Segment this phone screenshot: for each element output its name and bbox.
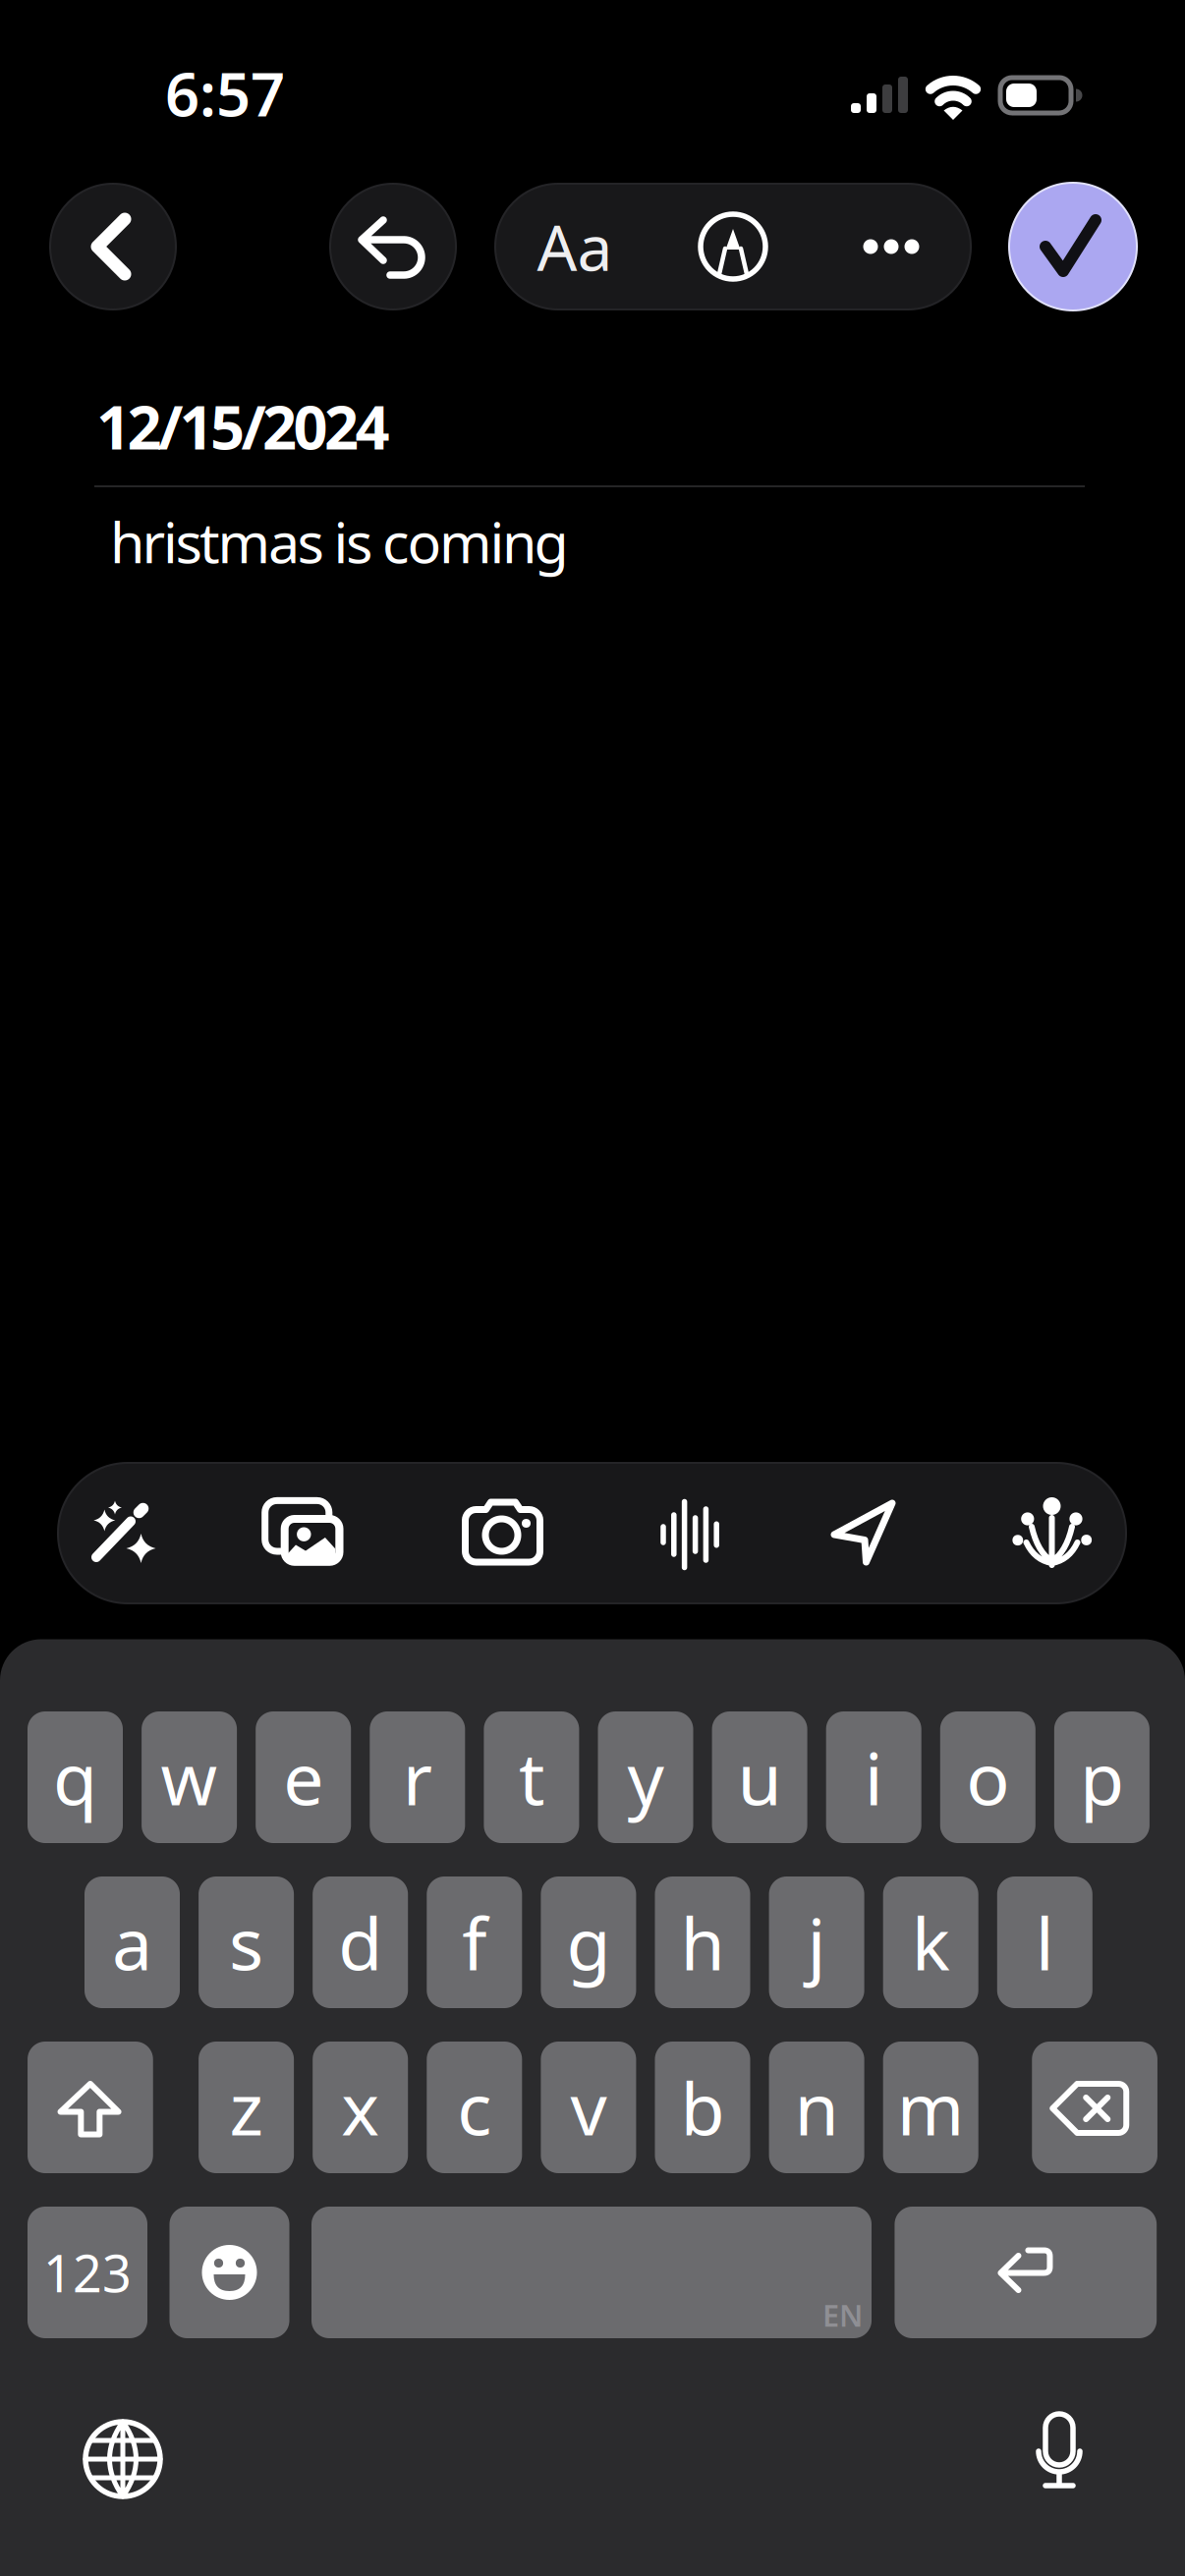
button[interactable]: Shift (28, 2042, 153, 2173)
button[interactable]: Back (50, 184, 176, 309)
button[interactable]: k (883, 1876, 978, 2008)
staticText: s (229, 1894, 263, 1990)
button[interactable]: u (712, 1711, 807, 1843)
button[interactable]: Camera (440, 1463, 561, 1603)
staticText: EN (822, 2295, 863, 2335)
button[interactable]: More (812, 184, 970, 309)
button[interactable]: Location (820, 1463, 919, 1603)
button[interactable]: p (1054, 1711, 1150, 1843)
staticText: j (807, 1894, 826, 1990)
button[interactable]: e (256, 1711, 351, 1843)
staticText: h (680, 1894, 725, 1990)
button[interactable]: l (997, 1876, 1092, 2008)
button[interactable]: c (427, 2042, 522, 2173)
button[interactable]: Space (311, 2207, 872, 2338)
staticText: b (680, 2060, 725, 2155)
button[interactable]: b (655, 2042, 750, 2173)
button[interactable]: t (484, 1711, 579, 1843)
staticText: f (462, 1894, 487, 1990)
button[interactable]: Next keyboard (79, 2415, 167, 2503)
staticText: t (519, 1729, 544, 1825)
staticText: e (283, 1729, 323, 1825)
button[interactable]: Magic wand (72, 1463, 172, 1603)
button[interactable]: 123 (28, 2207, 147, 2338)
button[interactable]: Photos (241, 1463, 368, 1603)
staticText: z (230, 2060, 263, 2155)
staticText: a (112, 1894, 152, 1990)
staticText: g (566, 1894, 611, 1990)
staticText: x (341, 2060, 379, 2155)
staticText: p (1080, 1729, 1124, 1825)
staticText: Aa (537, 205, 613, 288)
button[interactable]: q (28, 1711, 123, 1843)
button[interactable]: v (541, 2042, 636, 2173)
button[interactable]: Markup (654, 184, 812, 309)
button[interactable]: f (427, 1876, 522, 2008)
staticText: r (403, 1729, 432, 1825)
button[interactable]: m (883, 2042, 978, 2173)
button[interactable]: r (370, 1711, 465, 1843)
button[interactable]: Done (1009, 183, 1137, 310)
staticText: m (897, 2060, 965, 2155)
button[interactable]: h (655, 1876, 750, 2008)
staticText: n (795, 2060, 839, 2155)
button[interactable]: y (598, 1711, 693, 1843)
button[interactable]: Emoji (169, 2207, 289, 2338)
staticText: d (338, 1894, 382, 1990)
staticText: 123 (43, 2239, 132, 2306)
button[interactable]: j (769, 1876, 864, 2008)
button[interactable]: Text format (496, 184, 654, 309)
button[interactable]: g (541, 1876, 636, 2008)
button[interactable]: x (313, 2042, 408, 2173)
button[interactable]: Daily prompts (995, 1463, 1111, 1603)
button[interactable]: a (85, 1876, 180, 2008)
button[interactable]: s (199, 1876, 294, 2008)
button[interactable]: n (769, 2042, 864, 2173)
button[interactable]: w (142, 1711, 237, 1843)
button[interactable]: z (199, 2042, 294, 2173)
staticText: i (864, 1729, 883, 1825)
button[interactable]: d (313, 1876, 408, 2008)
staticText: o (966, 1729, 1009, 1825)
button[interactable]: Delete (1032, 2042, 1157, 2173)
staticText: v (570, 2060, 607, 2155)
staticText: y (627, 1729, 664, 1825)
button[interactable]: Undo (330, 184, 456, 309)
staticText: c (457, 2060, 492, 2155)
button[interactable]: Dictate (1015, 2412, 1103, 2500)
staticText: w (161, 1729, 218, 1825)
staticText: 6:57 (165, 53, 285, 133)
staticText: 12/15/2024 (96, 386, 390, 466)
staticText: u (738, 1729, 782, 1825)
button[interactable]: Return (895, 2207, 1157, 2338)
button[interactable]: Audio recording (646, 1463, 734, 1603)
staticText: q (53, 1729, 97, 1825)
button[interactable]: i (826, 1711, 921, 1843)
staticText: l (1035, 1894, 1054, 1990)
staticText: k (912, 1894, 950, 1990)
button[interactable]: o (940, 1711, 1035, 1843)
staticText: hristmas is coming (110, 504, 568, 579)
